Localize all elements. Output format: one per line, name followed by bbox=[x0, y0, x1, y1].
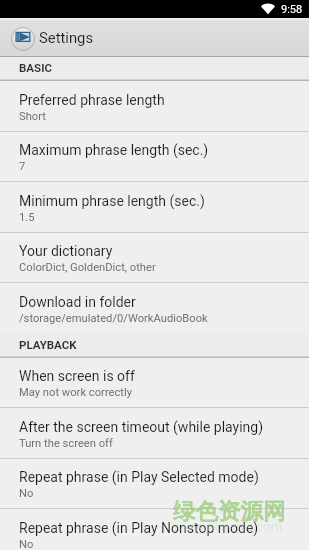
button[interactable]: Your dictionary bbox=[0, 232, 309, 283]
staticText: May not work correctly bbox=[19, 386, 133, 399]
staticText: Download in folder bbox=[19, 294, 136, 310]
staticText: BASIC bbox=[19, 61, 53, 74]
staticText: www.downcc.com bbox=[173, 517, 283, 535]
button[interactable]: Maximum phrase length (sec.) bbox=[0, 131, 309, 182]
staticText: No bbox=[19, 487, 34, 500]
staticText: No bbox=[19, 538, 34, 550]
staticText: Settings bbox=[39, 29, 94, 46]
button[interactable]: When screen is off bbox=[0, 357, 309, 408]
staticText: ColorDict, GoldenDict, other bbox=[19, 261, 156, 274]
staticText: When screen is off bbox=[19, 368, 135, 384]
staticText: After the screen timeout (while playing) bbox=[19, 419, 264, 435]
staticText: 1.5 bbox=[19, 211, 35, 224]
staticText: /storage/emulated/0/WorkAudioBook bbox=[19, 312, 208, 325]
staticText: Repeat phrase (in Play Nonstop mode) bbox=[19, 520, 259, 536]
button[interactable]: Repeat phrase (in Play Selected mode) bbox=[0, 458, 309, 509]
button[interactable]: After the screen timeout (while playing) bbox=[0, 408, 309, 459]
staticText: Short bbox=[19, 110, 46, 123]
button[interactable]: Download in folder bbox=[0, 283, 309, 334]
staticText: Turn the screen off bbox=[19, 437, 113, 450]
staticText: Maximum phrase length (sec.) bbox=[19, 142, 209, 158]
button[interactable]: Minimum phrase length (sec.) bbox=[0, 182, 309, 233]
staticText: 7 bbox=[19, 160, 26, 173]
staticText: Repeat phrase (in Play Selected mode) bbox=[19, 469, 259, 485]
staticText: Preferred phrase length bbox=[19, 92, 165, 108]
staticText: Minimum phrase length (sec.) bbox=[19, 193, 205, 209]
staticText: 9:58 bbox=[281, 3, 303, 16]
staticText: PLAYBACK bbox=[19, 338, 77, 351]
button[interactable]: Repeat phrase (in Play Nonstop mode) bbox=[0, 509, 309, 550]
button[interactable]: Preferred phrase length bbox=[0, 81, 309, 132]
staticText: 绿色资源网 bbox=[173, 497, 286, 525]
staticText: Your dictionary bbox=[19, 243, 113, 259]
